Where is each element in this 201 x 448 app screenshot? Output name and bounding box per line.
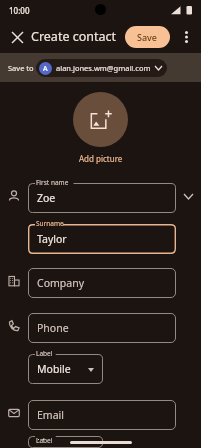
staticText: Create contact	[31, 28, 117, 45]
button[interactable]: Add picture	[73, 92, 128, 147]
button[interactable]: Surname	[28, 219, 176, 254]
staticText: Mobile	[37, 362, 71, 376]
button[interactable]: Expand name fields	[176, 181, 201, 211]
staticText: Email	[37, 408, 64, 422]
staticText: Save	[137, 31, 158, 43]
staticText: Surname	[36, 219, 64, 228]
button[interactable]: Label	[28, 436, 103, 448]
staticText: First name	[36, 178, 69, 187]
button[interactable]: Label	[28, 349, 103, 384]
staticText: Label	[36, 436, 53, 445]
staticText: Label	[36, 349, 53, 358]
button[interactable]: Save	[125, 26, 170, 48]
button[interactable]: Close	[4, 24, 30, 50]
staticText: Company	[37, 276, 84, 290]
button[interactable]: Add picture	[79, 153, 123, 164]
staticText: Zoe	[37, 191, 56, 205]
staticText: Taylor	[37, 232, 67, 246]
button[interactable]: Phone	[28, 308, 176, 343]
staticText: 10:00	[9, 5, 30, 16]
staticText: Phone	[37, 321, 69, 335]
button[interactable]: Company	[28, 263, 176, 298]
staticText: alan.jones.wm@gmail.com	[56, 63, 151, 73]
button[interactable]: More options	[174, 25, 198, 49]
button[interactable]: First name	[28, 178, 176, 213]
button[interactable]: A	[36, 59, 167, 77]
staticText: Save to	[8, 63, 34, 73]
button[interactable]: Email	[28, 395, 176, 430]
staticText: A	[43, 64, 48, 74]
staticText: Home	[37, 436, 67, 440]
